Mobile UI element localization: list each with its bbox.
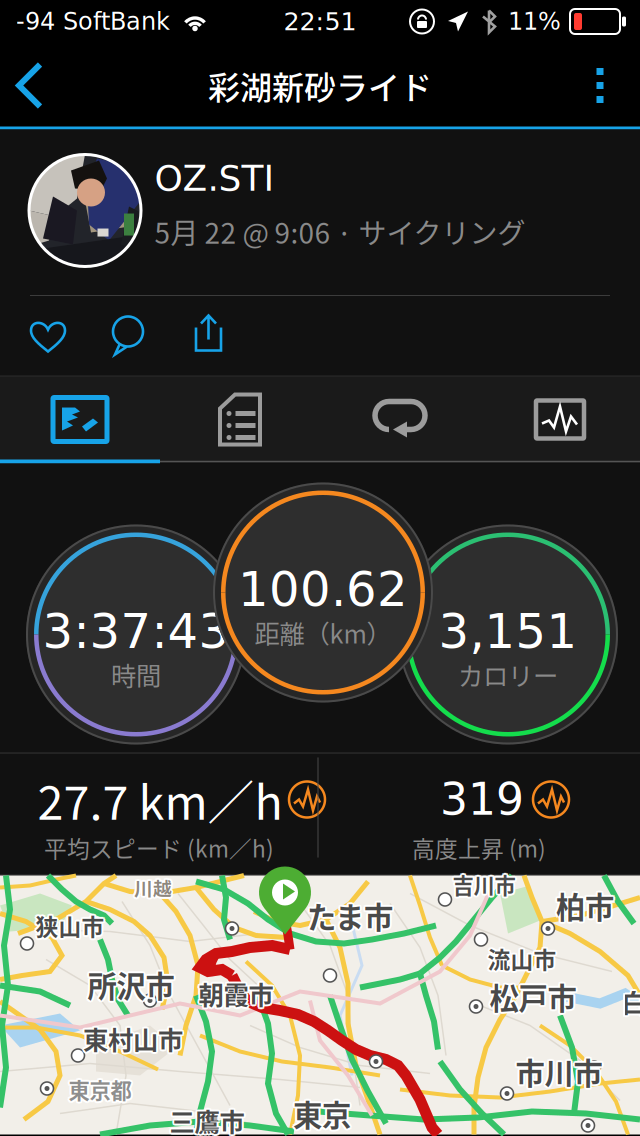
staticText: 流山市: [486, 944, 555, 976]
button[interactable]: Kudos: [13, 301, 83, 369]
button[interactable]: Back: [0, 41, 72, 129]
staticText: 三鷹市: [169, 1100, 244, 1136]
staticText: 松戸市: [487, 975, 574, 1018]
staticText: 11%: [508, 7, 561, 35]
staticText: 川越: [132, 875, 170, 902]
staticText: 川越: [132, 874, 170, 901]
staticText: たま市: [308, 893, 394, 935]
staticText: 流山市: [489, 941, 558, 973]
staticText: 三鷹市: [169, 1104, 244, 1136]
staticText: 柏市: [557, 883, 615, 925]
staticText: 白: [621, 983, 640, 1020]
staticText: 所沢市: [89, 965, 176, 1007]
staticText: 三鷹市: [171, 1102, 246, 1136]
staticText: 流山市: [489, 944, 558, 976]
staticText: 松戸市: [491, 975, 578, 1018]
staticText: 朝霞市: [198, 975, 273, 1012]
staticText: 所沢市: [89, 962, 176, 1004]
staticText: 白: [623, 985, 640, 1021]
staticText: 東村山市: [83, 1022, 183, 1059]
staticText: 松戸市: [491, 974, 578, 1016]
staticText: 狭山市: [35, 911, 104, 944]
staticText: 流山市: [487, 940, 556, 973]
staticText: 東京都: [68, 1072, 131, 1103]
staticText: 所沢市: [85, 963, 172, 1006]
staticText: 東村山市: [84, 1019, 184, 1055]
staticText: 吉川市: [454, 871, 517, 901]
staticText: 市川市: [517, 1052, 604, 1094]
staticText: 100.62: [238, 562, 408, 617]
staticText: 東京: [291, 1092, 349, 1135]
staticText: 東京: [295, 1092, 353, 1135]
staticText: 東京都: [67, 1076, 130, 1106]
staticText: 朝霞市: [198, 977, 273, 1014]
staticText: たま市: [307, 896, 393, 939]
staticText: 狭山市: [35, 909, 104, 942]
staticText: 東京: [293, 1092, 351, 1135]
staticText: 27.7 km／h: [37, 766, 282, 833]
button[interactable]: Analysis: [480, 375, 640, 463]
staticText: 流山市: [487, 942, 556, 975]
staticText: 所沢市: [87, 961, 174, 1004]
staticText: 市川市: [513, 1050, 600, 1093]
button[interactable]: Share: [178, 297, 238, 367]
staticText: 距離（km）: [254, 614, 391, 651]
button[interactable]: Laps: [320, 375, 480, 463]
staticText: 三鷹市: [168, 1104, 243, 1136]
staticText: 所沢市: [89, 963, 176, 1006]
staticText: 松戸市: [491, 977, 578, 1019]
staticText: 川越: [134, 872, 172, 899]
staticText: 松戸市: [488, 974, 575, 1016]
staticText: 東村山市: [84, 1022, 184, 1058]
staticText: 三鷹市: [171, 1104, 246, 1136]
staticText: 柏市: [554, 884, 612, 927]
staticText: 東京都: [67, 1073, 130, 1103]
staticText: 彩湖新砂ライド: [208, 62, 432, 109]
staticText: 白: [623, 982, 640, 1018]
staticText: 白: [623, 983, 640, 1020]
staticText: 流山市: [486, 941, 555, 973]
staticText: 松戸市: [489, 975, 576, 1018]
staticText: たま市: [307, 892, 393, 935]
staticText: たま市: [305, 893, 391, 935]
staticText: 狭山市: [34, 908, 103, 940]
staticText: たま市: [309, 894, 395, 937]
staticText: 東京都: [68, 1076, 131, 1107]
staticText: 市川市: [515, 1050, 602, 1093]
staticText: 松戸市: [489, 973, 576, 1016]
staticText: 吉川市: [451, 868, 514, 898]
button[interactable]: Map: [0, 375, 160, 463]
staticText: 市川市: [517, 1049, 604, 1091]
staticText: 東京: [294, 1094, 352, 1136]
staticText: 東村山市: [83, 1018, 183, 1055]
staticText: 吉川市: [452, 871, 515, 902]
staticText: 白: [620, 985, 640, 1021]
staticText: 川越: [134, 876, 172, 903]
staticText: 川越: [136, 874, 174, 901]
staticText: 朝霞市: [200, 977, 275, 1013]
staticText: 松戸市: [489, 977, 576, 1020]
staticText: 東村山市: [83, 1020, 183, 1057]
button[interactable]: More: [562, 41, 640, 129]
staticText: 所沢市: [87, 963, 174, 1006]
staticText: 東京: [291, 1091, 349, 1133]
staticText: たま市: [305, 894, 391, 937]
staticText: 川越: [132, 872, 170, 899]
staticText: OZ.STI: [154, 157, 274, 199]
staticText: 5月 22 @ 9:06 · サイクリング: [154, 211, 525, 252]
staticText: 柏市: [556, 882, 614, 925]
staticText: 柏市: [554, 883, 612, 925]
button[interactable]: Details: [160, 375, 320, 463]
staticText: 319: [440, 774, 524, 825]
staticText: 狭山市: [37, 909, 106, 942]
staticText: 東京都: [70, 1076, 133, 1106]
button[interactable]: Comment: [91, 299, 165, 371]
staticText: 市川市: [514, 1052, 601, 1094]
staticText: たま市: [308, 896, 394, 938]
staticText: 平均スピード (km／h): [44, 831, 274, 864]
staticText: 流山市: [489, 942, 558, 975]
staticText: 流山市: [485, 942, 554, 975]
staticText: 柏市: [557, 886, 615, 928]
staticText: 吉川市: [450, 869, 513, 900]
staticText: 吉川市: [452, 867, 515, 898]
